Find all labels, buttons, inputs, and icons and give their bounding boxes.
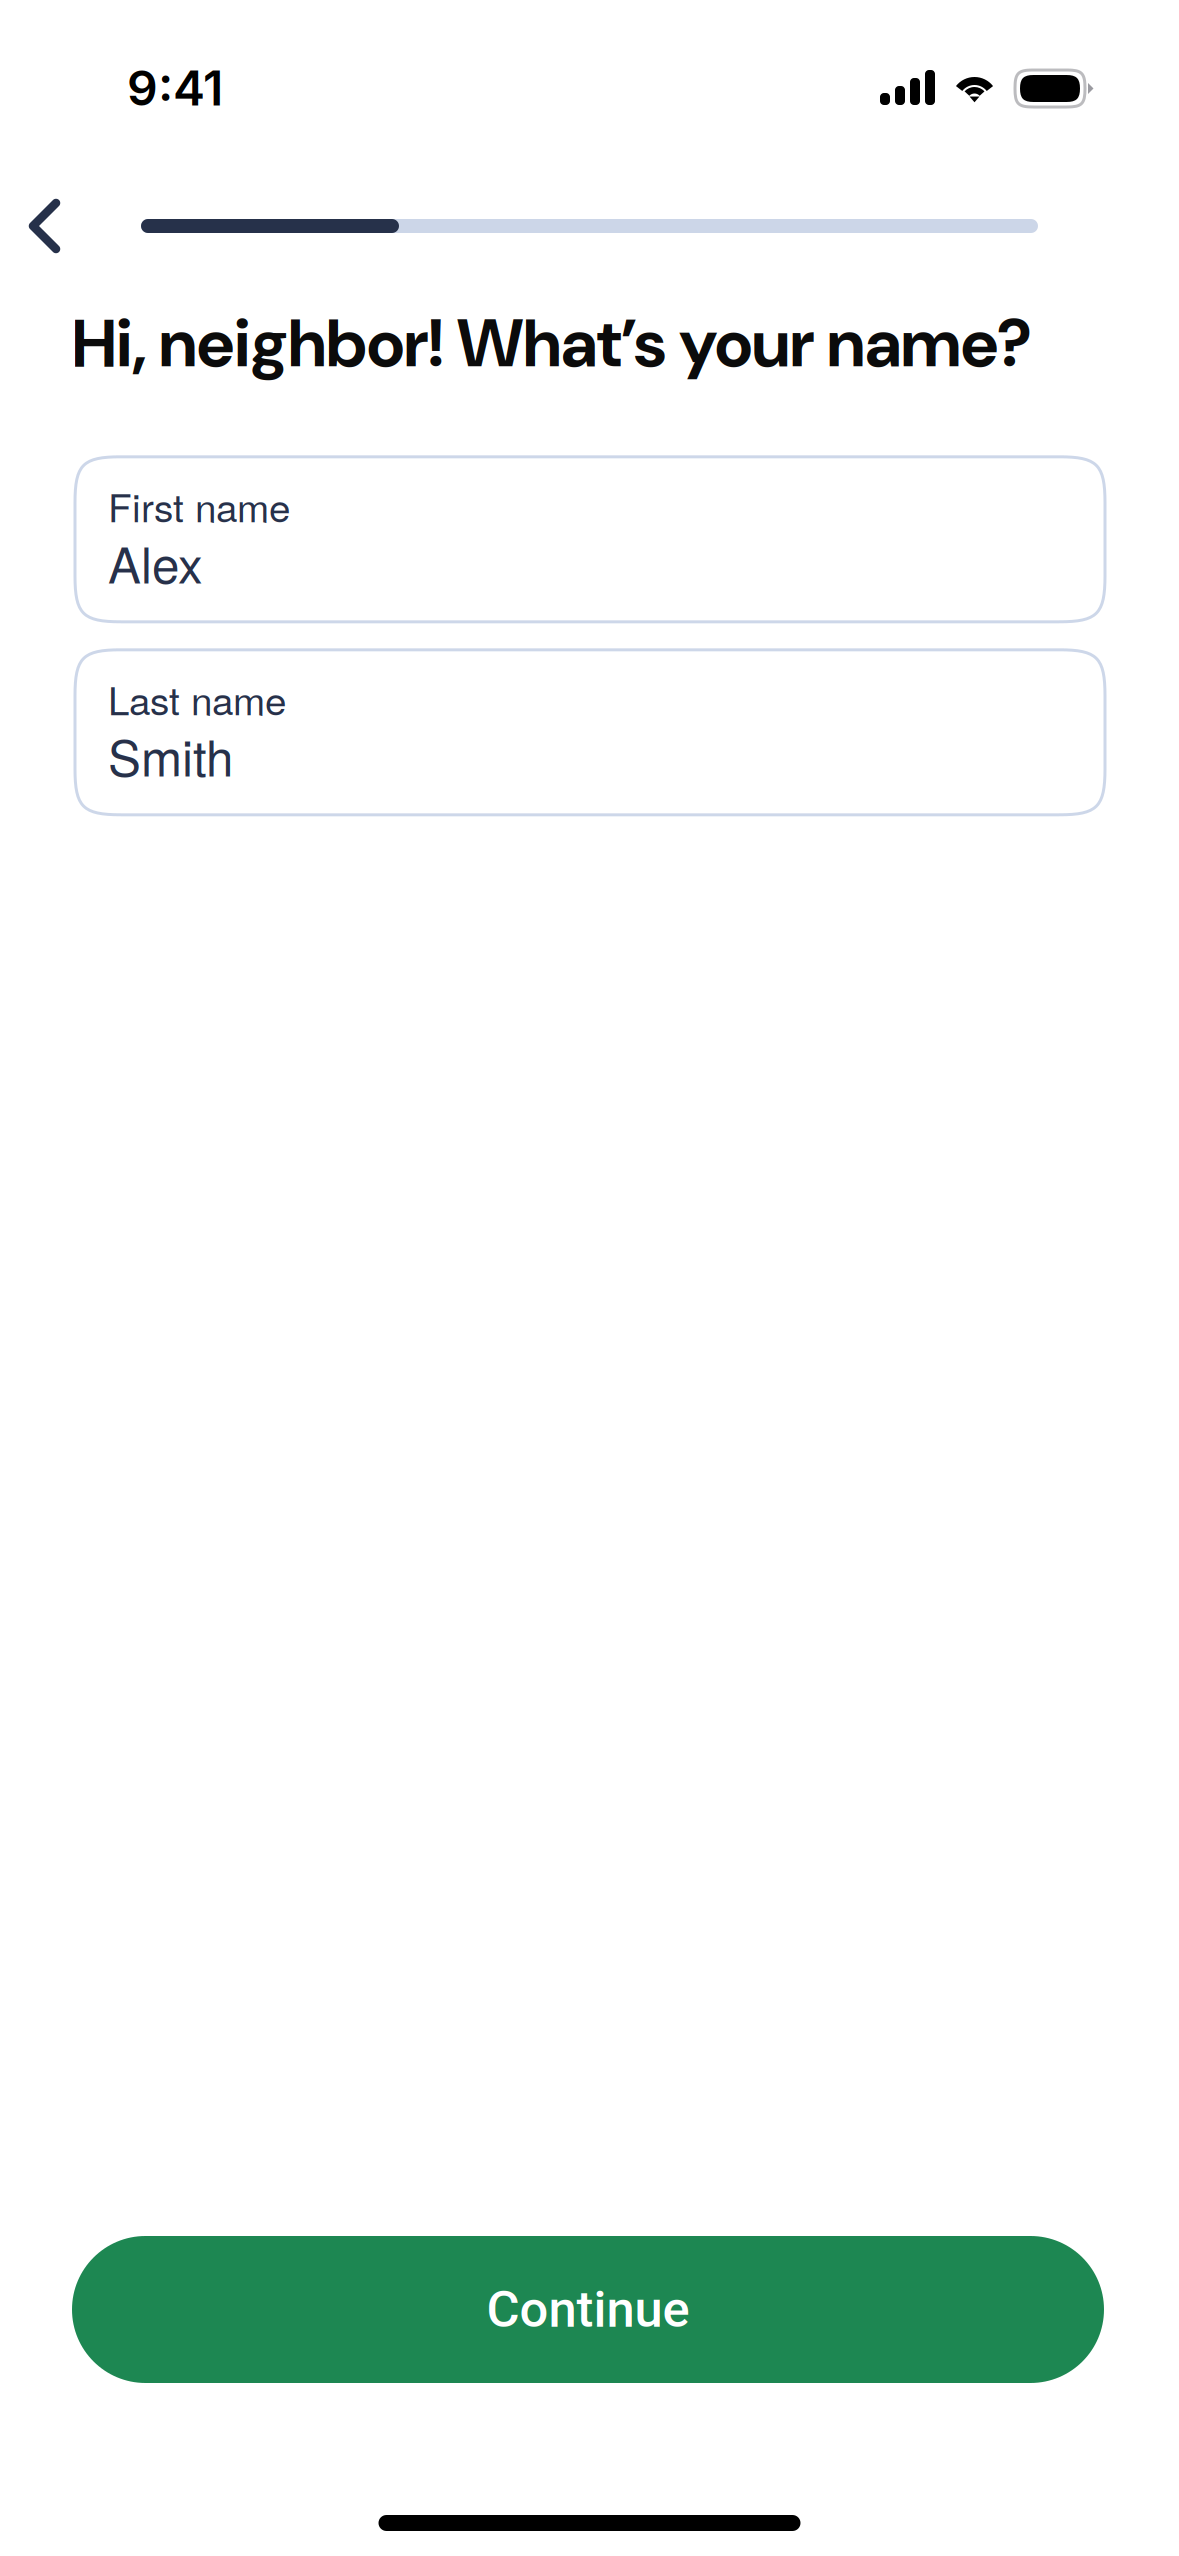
- staticText: Hi, neighbor! What’s your name?: [72, 300, 1032, 387]
- button[interactable]: Last name: [75, 650, 1105, 815]
- staticText: First name: [108, 478, 290, 533]
- staticText: Last name: [108, 671, 286, 726]
- button[interactable]: Continue: [72, 2236, 1104, 2383]
- staticText: 9:41: [127, 59, 223, 117]
- staticText: Smith: [108, 720, 233, 790]
- button[interactable]: Back: [0, 190, 89, 262]
- staticText: Continue: [486, 2280, 689, 2339]
- button[interactable]: First name: [75, 457, 1105, 622]
- staticText: Alex: [108, 527, 203, 597]
